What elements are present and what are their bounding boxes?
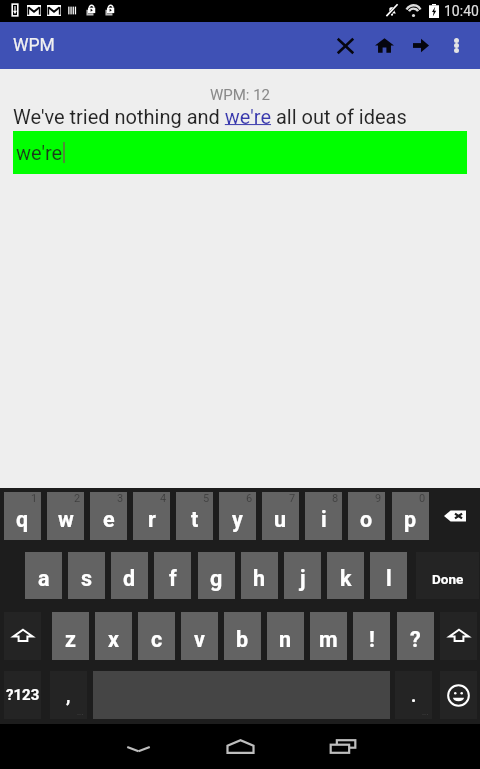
button[interactable]: s [68, 552, 105, 599]
button[interactable]: we're [13, 131, 467, 174]
staticText: 4 [160, 492, 167, 505]
staticText: We've tried nothing and we're all out of… [13, 105, 407, 128]
staticText: l [386, 566, 392, 591]
staticText: 10:40 [444, 3, 479, 19]
button[interactable]: ? [397, 612, 434, 660]
staticText: 9 [375, 492, 382, 505]
staticText: ? [410, 627, 421, 652]
button[interactable]: Recents [305, 724, 381, 769]
button[interactable]: a [25, 552, 62, 599]
button[interactable]: q [4, 492, 41, 540]
button[interactable]: ?123 [4, 671, 41, 719]
staticText: f [169, 566, 177, 591]
button[interactable]: Emoji [440, 671, 477, 719]
button[interactable]: k [327, 552, 364, 599]
button[interactable]: Back [100, 724, 176, 769]
staticText: q [16, 507, 29, 532]
button[interactable]: v [181, 612, 218, 660]
button[interactable]: o [348, 492, 385, 540]
button[interactable]: t [176, 492, 213, 540]
button[interactable]: Next [399, 22, 443, 69]
staticText: r [148, 507, 156, 532]
button[interactable]: i [305, 492, 342, 540]
staticText: ! [369, 627, 375, 652]
button[interactable]: . [395, 671, 432, 719]
staticText: g [210, 566, 223, 591]
button[interactable]: l [370, 552, 407, 599]
staticText: d [123, 566, 136, 591]
button[interactable]: u [262, 492, 299, 540]
button[interactable]: More options [438, 22, 475, 69]
staticText: n [279, 627, 292, 652]
button[interactable]: ! [353, 612, 390, 660]
staticText: u [274, 507, 287, 532]
staticText: ... [422, 708, 429, 717]
staticText: 0 [419, 492, 426, 505]
staticText: WPM [13, 35, 55, 56]
staticText: Done [432, 571, 464, 587]
button[interactable]: d [111, 552, 148, 599]
button[interactable]: Done [416, 552, 479, 599]
staticText: v [194, 627, 205, 652]
button[interactable]: w [47, 492, 84, 540]
button[interactable]: Close [323, 22, 367, 69]
button[interactable]: c [138, 612, 175, 660]
staticText: z [65, 627, 76, 652]
staticText: b [236, 627, 249, 652]
staticText: k [340, 566, 352, 591]
button[interactable]: y [219, 492, 256, 540]
staticText: x [108, 627, 119, 652]
button[interactable]: Backspace [431, 492, 478, 540]
button[interactable]: e [90, 492, 127, 540]
staticText: e [103, 507, 115, 532]
staticText: . [411, 685, 417, 706]
button[interactable]: , [50, 671, 87, 719]
button[interactable]: r [133, 492, 170, 540]
staticText: ... [77, 708, 84, 717]
button[interactable]: j [284, 552, 321, 599]
staticText: 6 [246, 492, 253, 505]
staticText: m [319, 627, 338, 652]
staticText: 5 [203, 492, 210, 505]
button[interactable]: f [154, 552, 191, 599]
button[interactable]: x [95, 612, 132, 660]
staticText: 2 [74, 492, 81, 505]
staticText: p [404, 507, 417, 532]
staticText: 3 [117, 492, 124, 505]
staticText: j [300, 566, 306, 591]
button[interactable]: h [241, 552, 278, 599]
staticText: 1 [31, 492, 38, 505]
button[interactable]: Shift [4, 612, 41, 660]
staticText: a [38, 566, 50, 591]
staticText: o [360, 507, 373, 532]
staticText: ?123 [6, 686, 40, 704]
staticText: c [151, 627, 163, 652]
staticText: WPM: 12 [0, 86, 480, 104]
button[interactable]: z [52, 612, 89, 660]
button[interactable]: g [198, 552, 235, 599]
staticText: i [321, 507, 327, 532]
button[interactable]: n [267, 612, 304, 660]
button[interactable]: Shift [440, 612, 477, 660]
button[interactable]: m [310, 612, 347, 660]
staticText: 8 [332, 492, 339, 505]
button[interactable]: Home [362, 22, 406, 69]
staticText: w [58, 507, 74, 532]
staticText: t [191, 507, 199, 532]
button[interactable]: Home [202, 724, 278, 769]
staticText: 7 [289, 492, 296, 505]
staticText: y [232, 507, 243, 532]
staticText: s [81, 566, 93, 591]
staticText: we're [16, 141, 63, 164]
button[interactable]: b [224, 612, 261, 660]
staticText: h [253, 566, 266, 591]
staticText: , [66, 685, 71, 706]
button[interactable]: p [392, 492, 429, 540]
